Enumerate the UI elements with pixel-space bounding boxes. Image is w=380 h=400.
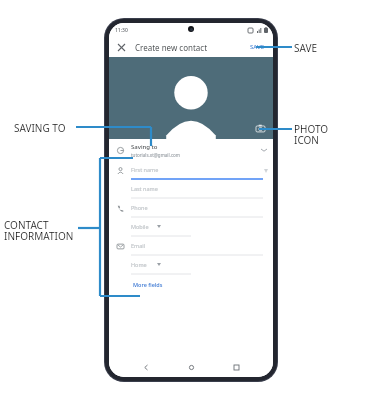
staticText: Create new contact [135,42,208,53]
button[interactable]: Back [138,359,154,375]
staticText: CONTACT INFORMATION [4,218,74,243]
button[interactable]: Saving to [109,139,273,161]
button[interactable]: Mobile [109,218,273,237]
button[interactable]: Email [109,237,273,256]
staticText: tutorials.xt@gmail.com [131,152,180,158]
button[interactable]: Photo icon [254,122,267,135]
button[interactable]: More fields [131,279,165,290]
staticText: SAVING TO [14,121,66,135]
staticText: SAVE [250,43,265,51]
button[interactable]: Name details [262,167,270,175]
button[interactable]: Close [113,39,129,55]
staticText: Saving to [131,143,158,151]
staticText: Last name [131,185,158,192]
button[interactable]: Recents [228,359,244,375]
staticText: Home [131,261,147,268]
staticText: SAVE [294,41,318,55]
button[interactable]: First name [109,161,273,180]
button[interactable]: Home [109,256,273,275]
staticText: Phone [131,204,148,211]
staticText: PHOTO ICON [294,122,329,147]
button[interactable]: SAVE [248,41,267,53]
staticText: Mobile [131,223,149,230]
button[interactable]: Phone [109,199,273,218]
staticText: Email [131,242,146,249]
staticText: More fields [133,281,163,288]
staticText: First name [131,166,159,173]
staticText: 11:30 [115,27,128,34]
button[interactable]: Last name [109,180,273,199]
button[interactable]: Home [183,359,199,375]
